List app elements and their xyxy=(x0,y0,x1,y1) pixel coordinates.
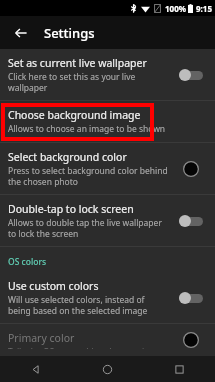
staticText: Will use selected colors, instead of bei… xyxy=(8,294,169,316)
button[interactable]: Toggle xyxy=(178,291,204,305)
staticText: Double-tap to lock screen xyxy=(8,202,134,216)
button[interactable]: Use custom colors xyxy=(0,272,215,323)
button[interactable]: Toggle xyxy=(178,214,204,228)
staticText: OS colors xyxy=(8,256,47,268)
button[interactable]: Home xyxy=(71,356,143,382)
staticText: Tells the OS to use this color as primar… xyxy=(8,346,169,349)
staticText: Set as current live wallpaper xyxy=(8,56,147,70)
staticText: Primary color xyxy=(8,331,75,345)
staticText: Use custom colors xyxy=(8,279,99,293)
staticText: Choose background image xyxy=(8,108,141,122)
button[interactable]: Double-tap to lock screen xyxy=(0,195,215,246)
button[interactable]: Toggle xyxy=(178,68,204,82)
staticText: Press to select background color behind … xyxy=(8,165,169,187)
staticText: Settings xyxy=(44,24,95,42)
button[interactable]: Set as current live wallpaper xyxy=(0,49,215,100)
staticText: 100% xyxy=(165,3,186,14)
button[interactable]: Pick color xyxy=(182,160,200,178)
staticText: 9:15 xyxy=(196,3,212,14)
button[interactable]: Choose background image xyxy=(0,101,215,142)
staticText: Allows to choose an image to be shown xyxy=(8,123,166,135)
staticText: Select background color xyxy=(8,150,127,164)
staticText: Allows to double tap the live wallpaper … xyxy=(8,217,169,239)
button[interactable]: Back xyxy=(6,18,36,48)
button[interactable]: Primary color xyxy=(0,324,215,356)
button[interactable]: Select background color xyxy=(0,143,215,194)
button[interactable]: Back xyxy=(0,356,71,382)
button[interactable]: Pick color xyxy=(182,331,200,349)
staticText: Click here to set this as your live wall… xyxy=(8,71,169,93)
button[interactable]: Recents xyxy=(143,356,215,382)
